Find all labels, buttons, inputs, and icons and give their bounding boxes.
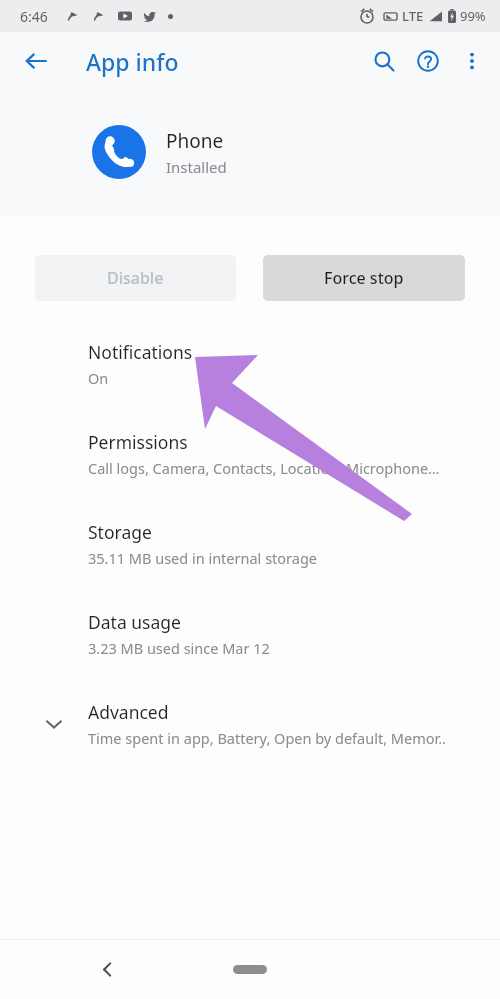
staticText: 6:46 (20, 7, 48, 26)
staticText: Time spent in app, Battery, Open by defa… (88, 728, 446, 748)
button[interactable]: Storage (0, 509, 500, 579)
button[interactable]: Permissions (0, 419, 500, 489)
button[interactable]: Notifications (0, 329, 500, 399)
button[interactable]: Data usage (0, 599, 500, 669)
staticText: Phone (166, 128, 224, 154)
staticText: LTE (402, 7, 424, 25)
button[interactable]: Search (362, 39, 406, 83)
staticText: Advanced (88, 700, 169, 724)
button[interactable]: More options (450, 39, 494, 83)
staticText: On (88, 368, 109, 388)
staticText: Disable (107, 267, 164, 289)
button[interactable]: Advanced (0, 689, 500, 759)
staticText: Force stop (324, 267, 404, 289)
staticText: App info (86, 46, 179, 77)
button[interactable]: Disable (35, 255, 236, 301)
staticText: Permissions (88, 430, 188, 454)
button[interactable]: Help (406, 39, 450, 83)
button[interactable]: Force stop (263, 255, 465, 301)
button[interactable]: Home (233, 965, 267, 974)
staticText: 35.11 MB used in internal storage (88, 548, 318, 568)
staticText: 3.23 MB used since Mar 12 (88, 638, 270, 658)
staticText: Notifications (88, 340, 193, 364)
button[interactable]: Back (14, 39, 58, 83)
staticText: Installed (166, 157, 227, 177)
staticText: Storage (88, 520, 152, 544)
staticText: Call logs, Camera, Contacts, Location, M… (88, 458, 440, 478)
staticText: 99% (460, 7, 486, 25)
button[interactable]: Back (86, 948, 128, 990)
staticText: Data usage (88, 610, 181, 634)
